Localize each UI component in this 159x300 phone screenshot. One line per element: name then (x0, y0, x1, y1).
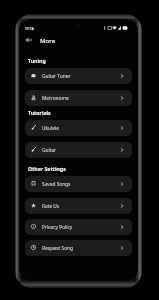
button[interactable]: Guitar Tuner (25, 68, 132, 84)
staticText: Tuning (28, 57, 46, 64)
staticText: Metronome (42, 95, 69, 102)
button[interactable]: Guitar (25, 142, 132, 158)
staticText: Guitar (42, 147, 57, 154)
button[interactable]: Metronome (25, 90, 132, 106)
button[interactable]: Saved Songs (25, 176, 132, 192)
staticText: 17:13 (25, 27, 33, 31)
staticText: Rate Us (42, 203, 60, 210)
button[interactable]: Privacy Policy (25, 219, 132, 235)
staticText: Tutorials (28, 109, 51, 116)
staticText: More (40, 36, 56, 44)
button[interactable]: Request Song (25, 240, 132, 256)
button[interactable]: Rate Us (25, 198, 132, 214)
staticText: Other Settings (28, 165, 66, 172)
staticText: Ukulele (42, 125, 59, 132)
staticText: Guitar Tuner (42, 73, 71, 80)
button[interactable]: Ukulele (25, 120, 132, 136)
staticText: Privacy Policy (42, 224, 73, 231)
staticText: Request Song (42, 245, 74, 252)
button[interactable]: Back (23, 34, 34, 45)
staticText: Saved Songs (42, 181, 71, 188)
